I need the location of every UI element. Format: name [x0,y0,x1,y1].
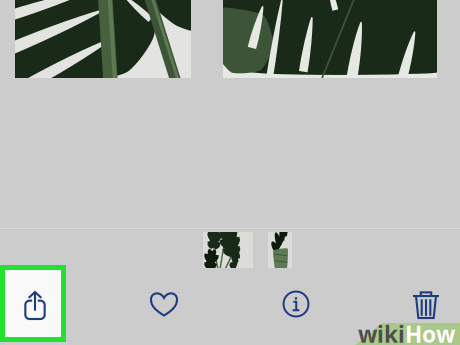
staticText: How [405,319,455,345]
button[interactable]: Share [18,289,52,321]
button[interactable]: Delete [409,288,443,320]
button[interactable]: Share [18,289,52,321]
staticText: wiki [358,319,405,345]
button[interactable]: Info [279,288,313,320]
button[interactable]: Favourite [147,288,181,320]
